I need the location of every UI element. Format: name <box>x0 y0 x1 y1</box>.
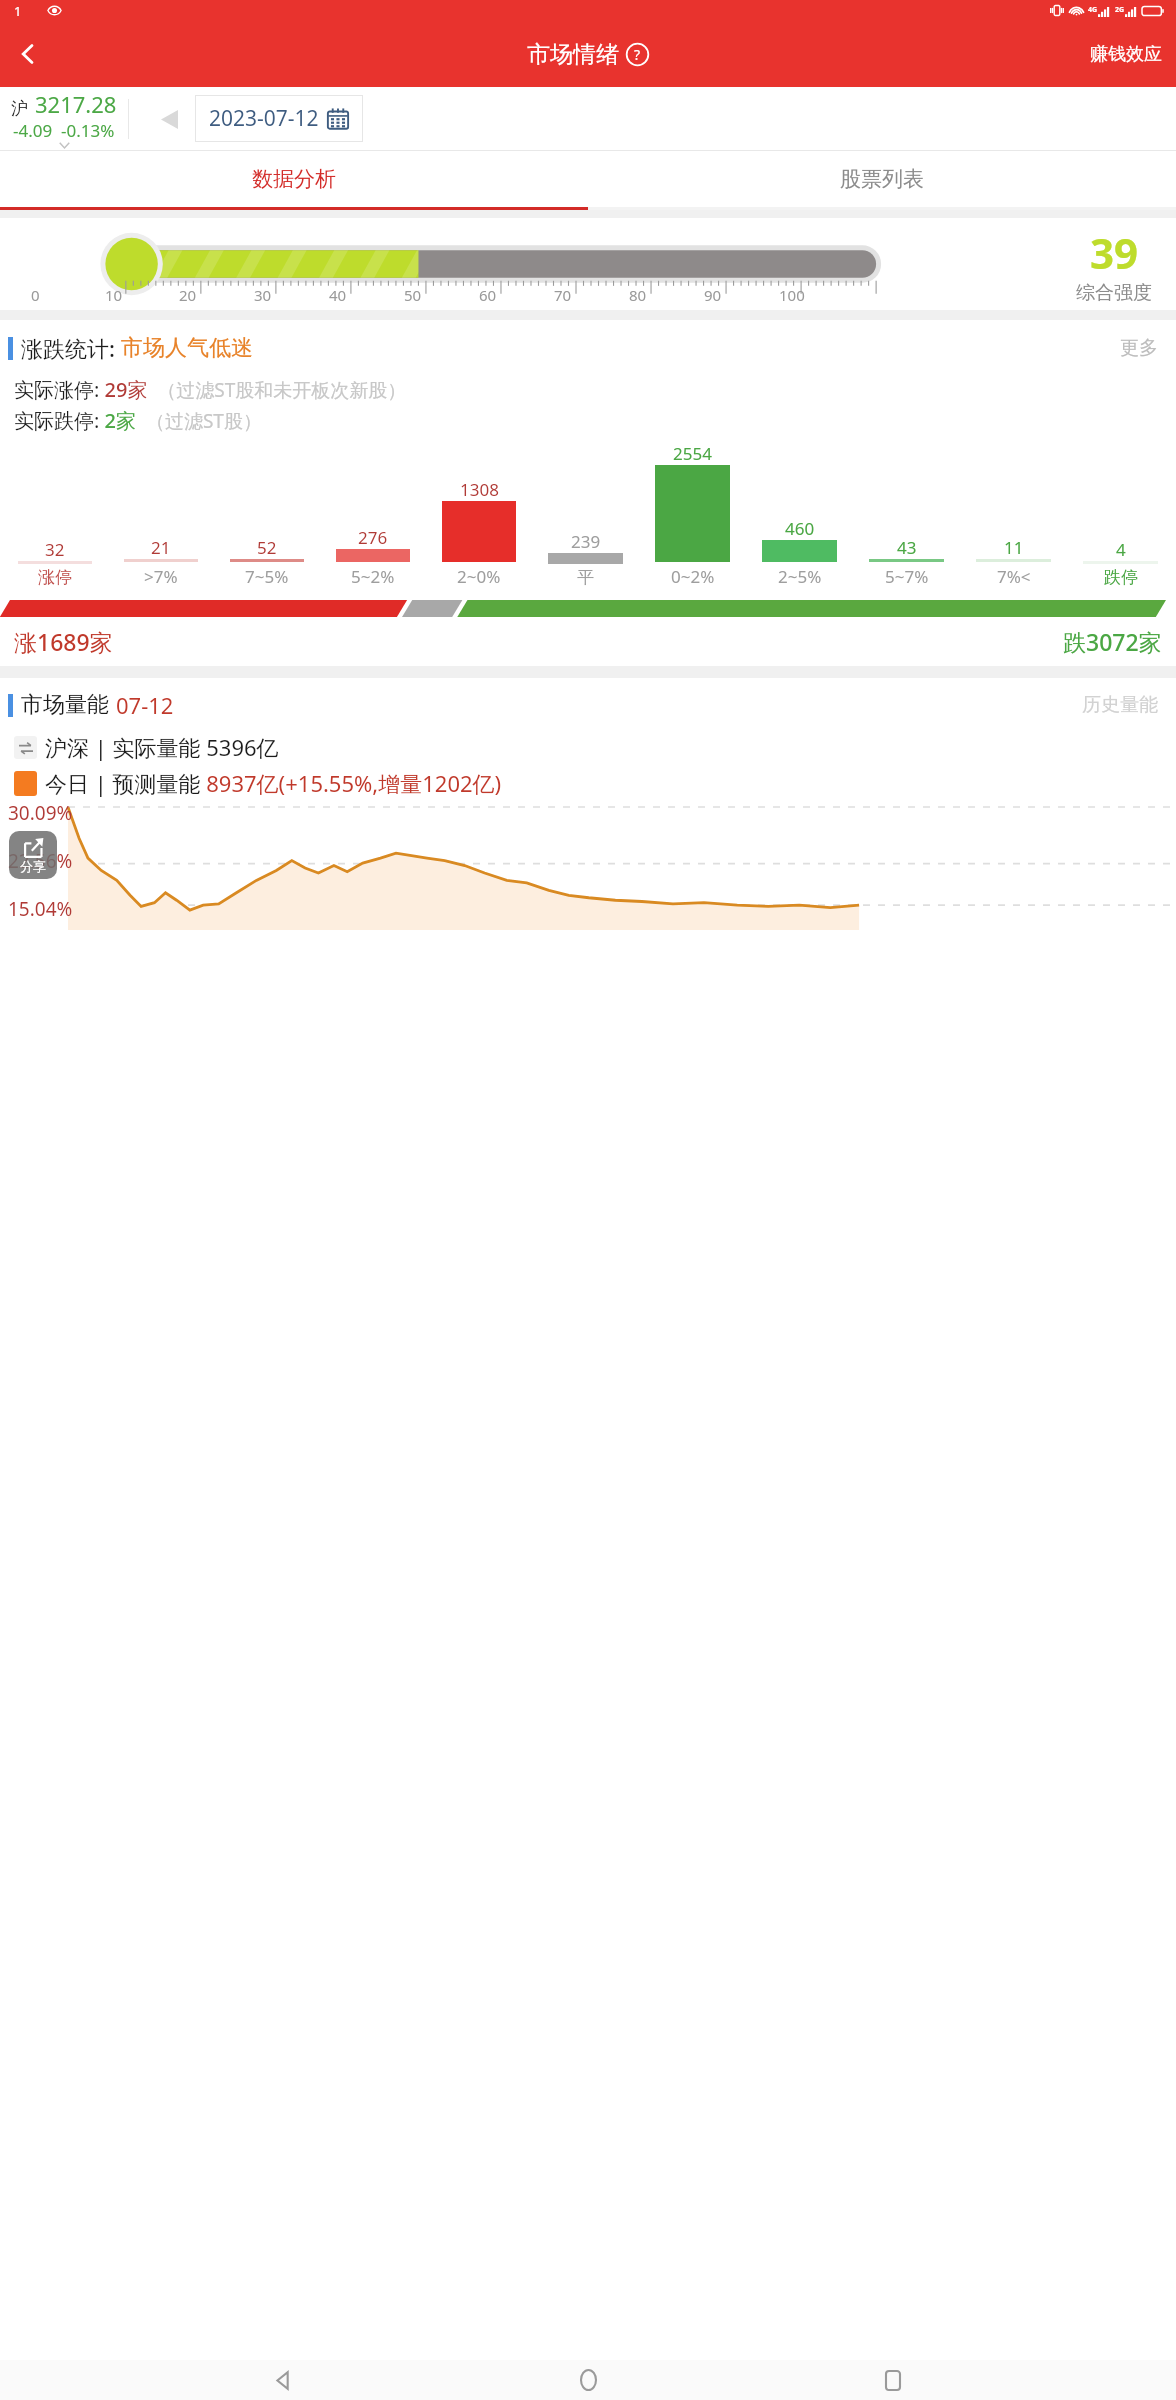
staticText: 2023-07-12 <box>209 104 319 133</box>
staticText: 90 <box>704 285 722 305</box>
staticText: 沪 <box>11 98 28 119</box>
staticText: 11 <box>1004 536 1024 559</box>
staticText: 10 <box>105 285 123 305</box>
staticText: 2~0% <box>457 565 501 588</box>
staticText: 4 <box>1116 538 1126 561</box>
staticText: 40 <box>329 285 347 305</box>
button[interactable]: Previous day <box>151 101 187 137</box>
staticText: 5~7% <box>885 565 929 588</box>
staticText: 7~5% <box>245 565 289 588</box>
staticText: 实际涨停: 29家 （过滤ST股和未开板次新股） <box>14 376 407 403</box>
staticText: 7%< <box>997 565 1031 588</box>
button[interactable]: Home <box>566 2360 610 2400</box>
staticText: 70 <box>554 285 572 305</box>
staticText: 2554 <box>673 442 712 465</box>
staticText: 30.09% <box>8 800 73 826</box>
button[interactable]: 更多 <box>1116 332 1162 364</box>
staticText: 赚钱效应 <box>1090 43 1162 66</box>
staticText: >7% <box>144 565 178 588</box>
staticText: 2G <box>1115 5 1125 15</box>
staticText: 100 <box>779 285 805 305</box>
button[interactable]: 沪 <box>0 89 128 149</box>
staticText: 60 <box>479 285 497 305</box>
staticText: 32 <box>45 538 65 561</box>
staticText: 239 <box>571 530 601 553</box>
staticText: 50 <box>404 285 422 305</box>
staticText: 涨停 <box>38 567 72 588</box>
staticText: 80 <box>629 285 647 305</box>
staticText: 22.56% <box>8 848 73 874</box>
staticText: 0~2% <box>671 565 715 588</box>
button[interactable]: 2023-07-12 <box>195 95 363 142</box>
staticText: 市场情绪 <box>527 40 619 69</box>
staticText: 07-12 <box>116 690 174 720</box>
staticText: 涨跌统计: <box>21 333 115 363</box>
staticText: 涨1689家 <box>14 626 113 657</box>
staticText: 跌停 <box>1104 567 1138 588</box>
staticText: 15.04% <box>8 896 73 922</box>
button[interactable]: 股票列表 <box>588 151 1176 207</box>
button[interactable]: 市场情绪 <box>523 36 653 73</box>
staticText: 历史量能 <box>1082 693 1158 717</box>
staticText: 实际跌停: 2家 （过滤ST股） <box>14 407 262 434</box>
staticText: 0 <box>31 285 40 305</box>
staticText: 跌3072家 <box>1063 626 1162 657</box>
staticText: ? <box>634 45 641 64</box>
staticText: 股票列表 <box>840 166 924 192</box>
staticText: 1 <box>14 2 22 20</box>
staticText: 分享 <box>20 858 46 874</box>
button[interactable]: Back <box>261 2360 305 2400</box>
staticText: 1308 <box>460 478 499 501</box>
staticText: 市场人气低迷 <box>121 334 253 362</box>
staticText: 276 <box>358 526 388 549</box>
staticText: -4.09 -0.13% <box>13 119 115 142</box>
staticText: 综合强度 <box>1076 281 1152 305</box>
button[interactable]: 赚钱效应 <box>1086 39 1166 70</box>
staticText: 30 <box>254 285 272 305</box>
staticText: 平 <box>577 567 594 588</box>
staticText: 5~2% <box>351 565 395 588</box>
button[interactable]: Recents <box>871 2360 915 2400</box>
button[interactable]: 历史量能 <box>1078 689 1162 721</box>
staticText: 沪深 | 实际量能 5396亿 <box>45 732 279 762</box>
staticText: 2~5% <box>778 565 822 588</box>
staticText: 43 <box>897 536 917 559</box>
staticText: 39 <box>1090 224 1139 281</box>
staticText: 52 <box>257 536 277 559</box>
staticText: 市场量能 <box>21 691 109 719</box>
staticText: 3217.28 <box>35 89 117 119</box>
button[interactable]: Back <box>6 32 50 76</box>
button[interactable]: 数据分析 <box>0 151 588 207</box>
staticText: 460 <box>785 517 815 540</box>
staticText: 20 <box>179 285 197 305</box>
staticText: 21 <box>151 536 171 559</box>
staticText: 4G <box>1088 5 1098 15</box>
button[interactable]: 分享 <box>9 831 57 879</box>
staticText: 更多 <box>1120 336 1158 360</box>
staticText: 今日 | 预测量能 8937亿(+15.55%,增量1202亿) <box>45 768 502 798</box>
staticText: 数据分析 <box>252 166 336 192</box>
